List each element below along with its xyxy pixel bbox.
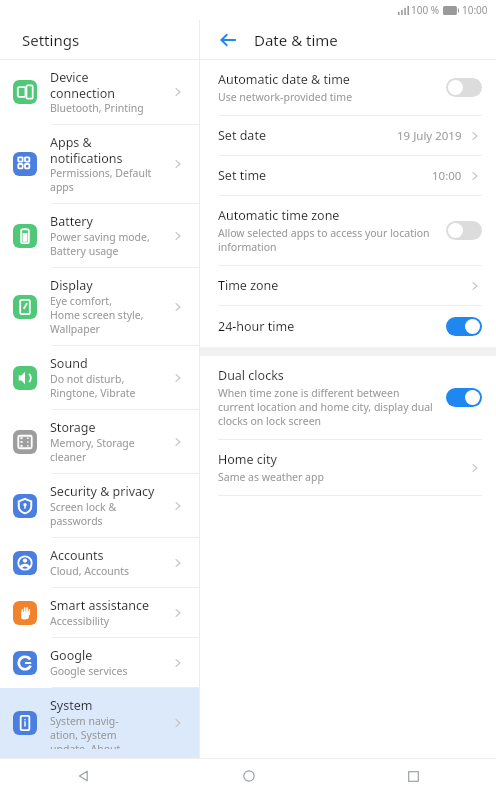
staticText: Storage — [50, 419, 96, 436]
staticText: Time zone — [218, 277, 279, 294]
button[interactable]: Automatic time zone — [200, 196, 496, 265]
staticText: 24-hour time — [218, 318, 295, 335]
button[interactable]: Toggle on — [446, 388, 482, 407]
staticText: When time zone is different between curr… — [218, 386, 433, 428]
staticText: Memory, Storage cleaner — [50, 436, 135, 464]
staticText: Device connection — [50, 69, 116, 101]
staticText: 19 July 2019 — [397, 128, 462, 144]
button[interactable]: Back — [0, 759, 166, 793]
button[interactable]: Toggle off — [446, 78, 482, 97]
button[interactable]: Display — [0, 268, 199, 345]
staticText: Google services — [50, 664, 128, 678]
staticText: Automatic time zone — [218, 207, 340, 224]
button[interactable]: Toggle on — [446, 317, 482, 336]
button[interactable]: Home — [166, 759, 331, 793]
button[interactable]: Sound — [0, 346, 199, 409]
staticText: Accessibility — [50, 614, 110, 628]
button[interactable]: Storage — [0, 410, 199, 473]
staticText: Settings — [22, 30, 80, 50]
staticText: Dual clocks — [218, 367, 284, 384]
staticText: System navig- ation, System update, Abou… — [50, 714, 134, 749]
staticText: Permissions, Default apps — [50, 166, 152, 194]
button[interactable]: Home city — [200, 440, 496, 495]
staticText: System — [50, 697, 93, 714]
staticText: Smart assistance — [50, 597, 149, 614]
staticText: Power saving mode, Battery usage — [50, 230, 150, 258]
button[interactable]: Device connection — [0, 60, 199, 124]
staticText: Accounts — [50, 547, 104, 564]
staticText: Security & privacy — [50, 483, 155, 500]
staticText: Allow selected apps to access your locat… — [218, 226, 430, 254]
staticText: 10:00 — [462, 3, 488, 17]
button[interactable]: 24-hour time — [200, 306, 496, 347]
staticText: Google — [50, 647, 93, 664]
button[interactable]: Back — [214, 26, 242, 54]
button[interactable]: System — [0, 688, 199, 758]
staticText: Display — [50, 277, 93, 294]
staticText: 100 % — [411, 3, 440, 17]
staticText: Cloud, Accounts — [50, 564, 130, 578]
staticText: Sound — [50, 355, 88, 372]
button[interactable]: Google — [0, 638, 199, 687]
staticText: Set date — [218, 127, 266, 144]
button[interactable]: Apps & notifications — [0, 125, 199, 203]
staticText: Date & time — [254, 30, 338, 50]
button[interactable]: Toggle off — [446, 221, 482, 240]
button[interactable]: Time zone — [200, 266, 496, 305]
button[interactable]: Accounts — [0, 538, 199, 587]
staticText: Screen lock & passwords — [50, 500, 117, 528]
button[interactable]: Security & privacy — [0, 474, 199, 537]
button[interactable]: Recent apps — [331, 759, 496, 793]
staticText: Do not disturb, Ringtone, Vibrate — [50, 372, 136, 400]
button[interactable]: Set date — [200, 116, 496, 155]
button[interactable]: Battery — [0, 204, 199, 267]
staticText: Automatic date & time — [218, 71, 350, 88]
button[interactable]: Dual clocks — [200, 356, 496, 439]
staticText: Same as weather app — [218, 470, 324, 484]
staticText: Battery — [50, 213, 93, 230]
staticText: Eye comfort, Home screen style, Wallpape… — [50, 294, 144, 336]
staticText: Bluetooth, Printing — [50, 101, 144, 115]
staticText: Set time — [218, 167, 267, 184]
staticText: Apps & notifications — [50, 134, 123, 166]
button[interactable]: Automatic date & time — [200, 60, 496, 115]
button[interactable]: Set time — [200, 156, 496, 195]
staticText: 10:00 — [432, 168, 462, 184]
staticText: Use network-provided time — [218, 90, 353, 104]
staticText: Home city — [218, 451, 277, 468]
button[interactable]: Smart assistance — [0, 588, 199, 637]
